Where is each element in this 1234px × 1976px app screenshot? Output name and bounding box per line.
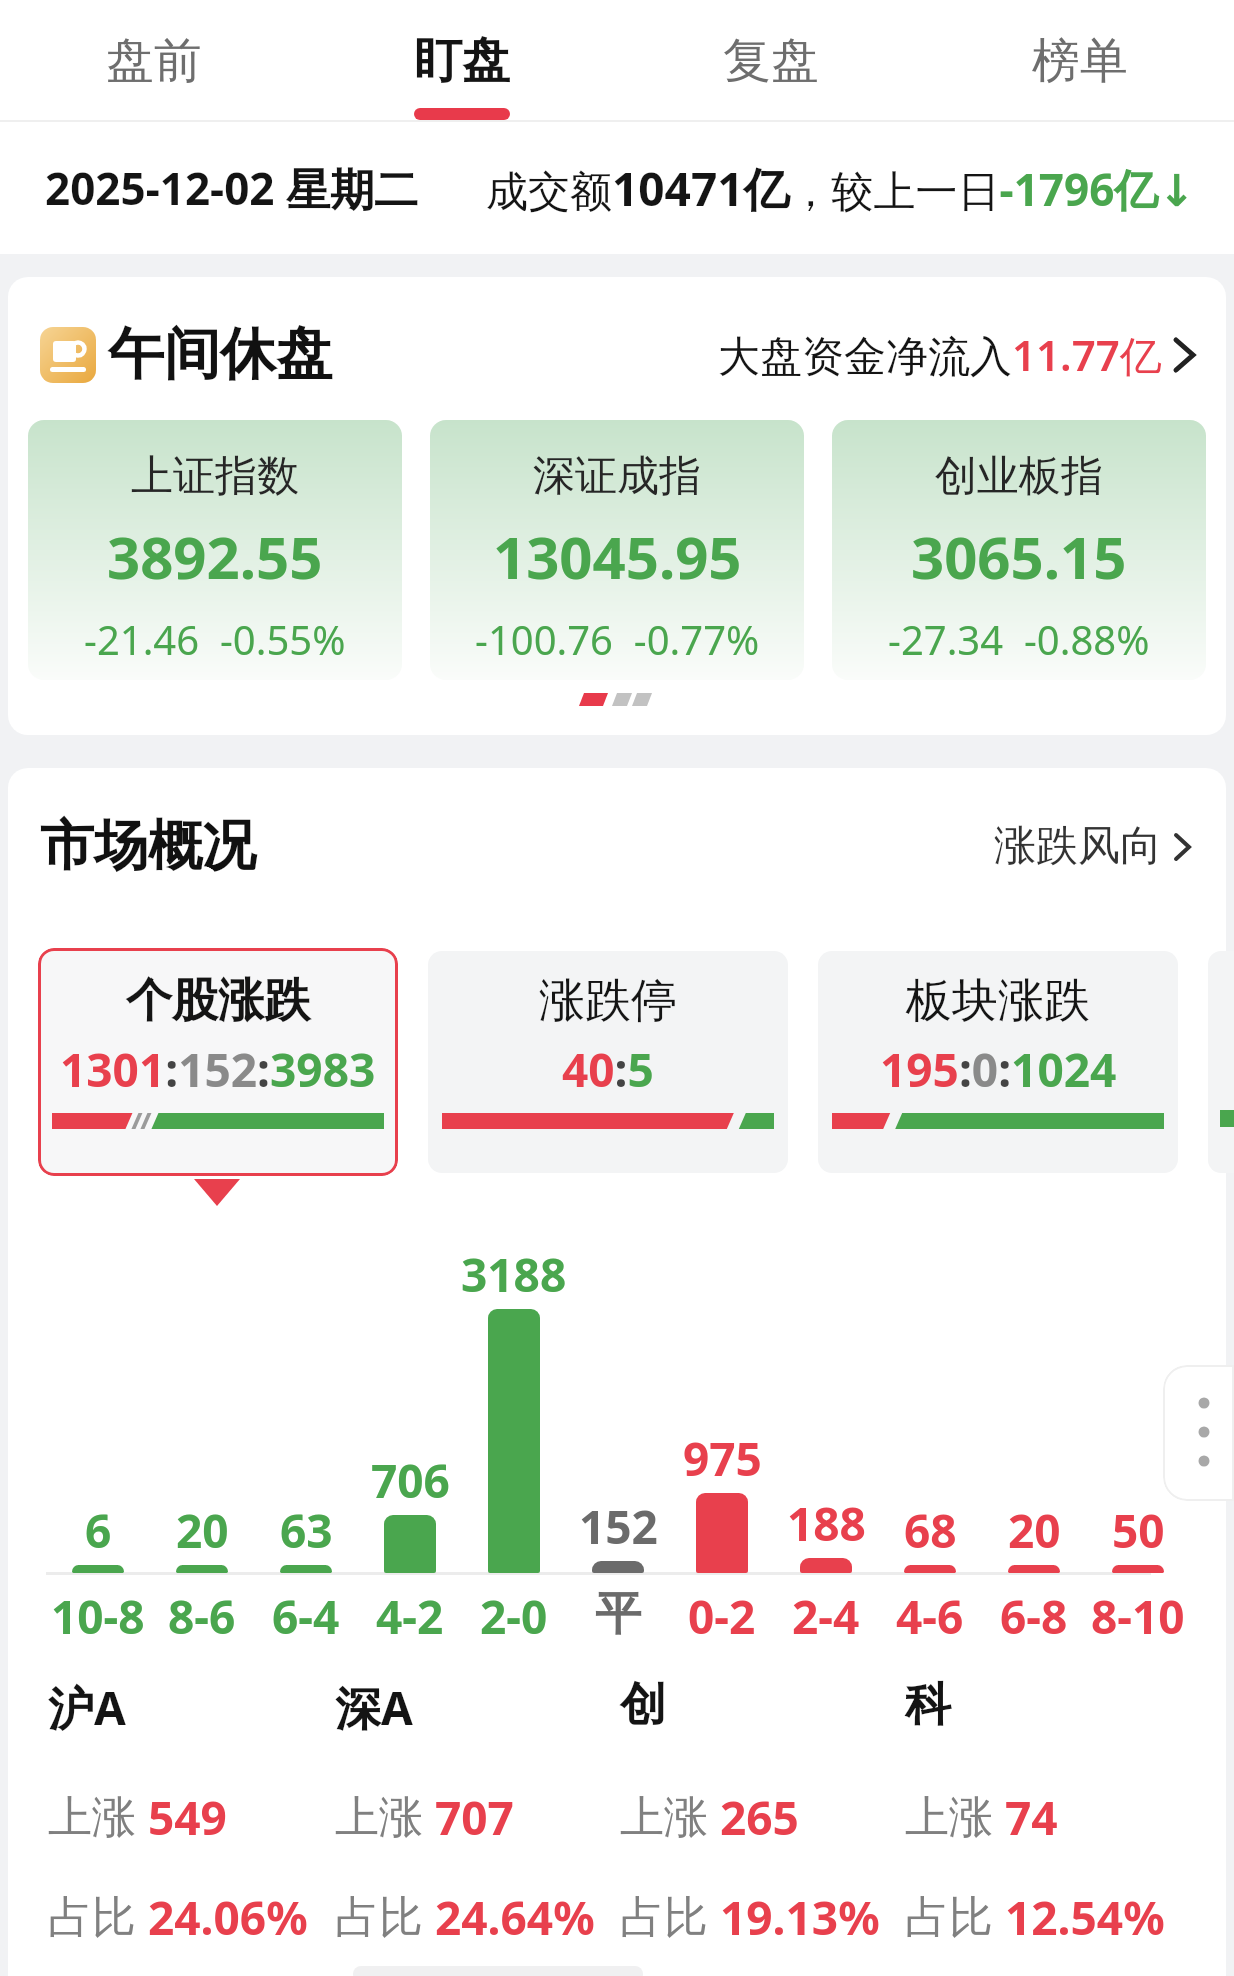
- staticText: 涨跌停: [539, 972, 677, 1030]
- staticText: 1301:152:3983: [60, 1038, 376, 1101]
- staticText: 占比: [48, 1890, 136, 1945]
- staticText: 上涨: [335, 1790, 423, 1845]
- staticText: 549: [148, 1786, 227, 1849]
- staticText: 975: [683, 1427, 762, 1485]
- staticText: 2025-12-02 星期二: [45, 158, 418, 218]
- button[interactable]: 复盘: [616, 0, 925, 122]
- button[interactable]: [1163, 1365, 1234, 1501]
- staticText: 40:5: [562, 1038, 654, 1101]
- staticText: 盘前: [106, 31, 202, 91]
- staticText: 68: [904, 1499, 957, 1557]
- staticText: 盯盘: [414, 31, 510, 91]
- staticText: 涨跌风向: [994, 820, 1162, 873]
- staticText: 板块涨跌: [906, 972, 1090, 1030]
- staticText: -27.34 -0.88%: [888, 612, 1150, 666]
- staticText: 上涨: [905, 1790, 993, 1845]
- staticText: 6-4: [272, 1585, 340, 1643]
- staticText: 24.06%: [148, 1886, 308, 1949]
- staticText: 午间休盘: [108, 319, 332, 390]
- staticText: 74: [1005, 1786, 1058, 1849]
- staticText: 20: [176, 1499, 229, 1557]
- staticText: 4-2: [376, 1585, 444, 1643]
- staticText: 265: [720, 1786, 799, 1849]
- staticText: -21.46 -0.55%: [84, 612, 346, 666]
- staticText: 4-6: [896, 1585, 964, 1643]
- staticText: 152: [579, 1495, 658, 1553]
- staticText: 上涨: [48, 1790, 136, 1845]
- staticText: 榜单: [1032, 31, 1128, 91]
- button[interactable]: 榜单: [925, 0, 1234, 122]
- staticText: 沪A: [48, 1676, 126, 1739]
- staticText: 3892.55: [107, 517, 323, 596]
- staticText: 上证指数: [131, 450, 299, 503]
- button[interactable]: 大盘资金净流入11.77亿: [718, 326, 1196, 383]
- staticText: 占比: [335, 1890, 423, 1945]
- button[interactable]: 涨跌停: [428, 951, 788, 1173]
- staticText: 6-8: [1000, 1585, 1068, 1643]
- staticText: 占比: [620, 1890, 708, 1945]
- staticText: 大盘资金净流入11.77亿: [718, 326, 1162, 383]
- staticText: 创: [620, 1676, 666, 1734]
- staticText: 上涨: [620, 1790, 708, 1845]
- staticText: 195:0:1024: [880, 1038, 1117, 1101]
- staticText: 3188: [461, 1243, 567, 1301]
- staticText: 24.64%: [435, 1886, 595, 1949]
- staticText: 20: [1008, 1499, 1061, 1557]
- staticText: 复盘: [723, 31, 819, 91]
- button[interactable]: 创业板指: [832, 420, 1206, 680]
- staticText: 3065.15: [911, 517, 1127, 596]
- staticText: 深证成指: [533, 450, 701, 503]
- staticText: 科: [905, 1676, 951, 1734]
- staticText: -100.76 -0.77%: [475, 612, 760, 666]
- staticText: 6: [85, 1499, 112, 1557]
- staticText: 50: [1112, 1499, 1165, 1557]
- staticText: 成交额10471亿，较上一日-1796亿↓: [486, 157, 1196, 220]
- staticText: 19.13%: [720, 1886, 880, 1949]
- staticText: 188: [787, 1492, 866, 1550]
- staticText: 创业板指: [935, 450, 1103, 503]
- staticText: 13045.95: [493, 517, 742, 596]
- staticText: 8-6: [168, 1585, 236, 1643]
- button[interactable]: 板块涨跌: [818, 951, 1178, 1173]
- button[interactable]: 盯盘: [308, 0, 616, 122]
- staticText: 0-2: [688, 1585, 756, 1643]
- staticText: 个股涨跌: [126, 972, 310, 1030]
- button[interactable]: 盘前: [0, 0, 308, 122]
- staticText: 平: [595, 1585, 641, 1643]
- staticText: 10-8: [51, 1585, 145, 1643]
- staticText: 2-4: [792, 1585, 860, 1643]
- staticText: 2-0: [480, 1585, 548, 1643]
- staticText: 12.54%: [1005, 1886, 1165, 1949]
- staticText: 8-10: [1091, 1585, 1185, 1643]
- staticText: 深A: [335, 1676, 413, 1739]
- staticText: 市场概况: [40, 812, 256, 880]
- staticText: 63: [280, 1499, 333, 1557]
- button[interactable]: 个股涨跌: [38, 948, 398, 1176]
- button[interactable]: 涨跌风向: [994, 820, 1192, 873]
- staticText: 707: [435, 1786, 514, 1849]
- staticText: 占比: [905, 1890, 993, 1945]
- staticText: 706: [371, 1449, 450, 1507]
- button[interactable]: 上证指数: [28, 420, 402, 680]
- button[interactable]: 深证成指: [430, 420, 804, 680]
